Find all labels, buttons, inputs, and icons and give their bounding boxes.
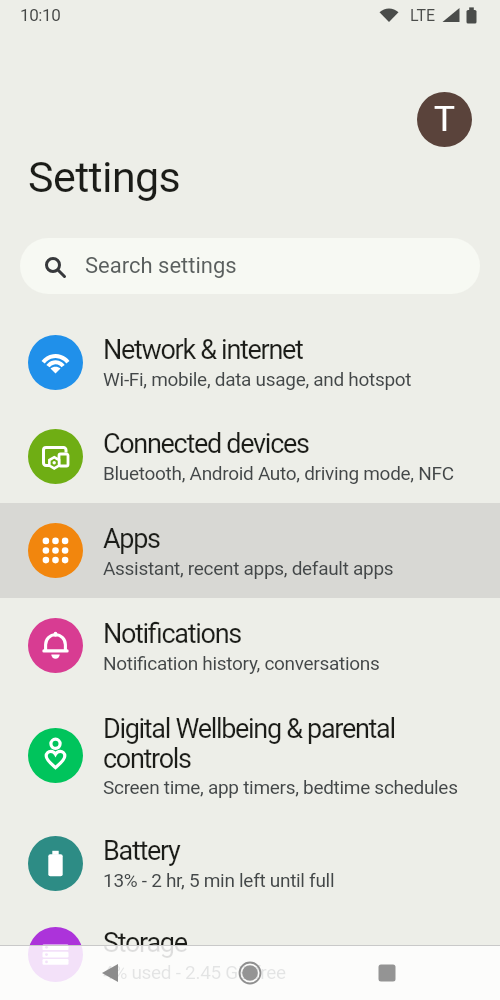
button[interactable] bbox=[84, 945, 139, 1000]
button[interactable]: Apps bbox=[0, 503, 500, 598]
staticText: Notifications bbox=[103, 618, 241, 650]
staticText: Wi-Fi, mobile, data usage, and hotspot bbox=[103, 368, 412, 390]
button[interactable]: Search settings bbox=[20, 238, 480, 294]
button[interactable]: Connected devices bbox=[0, 409, 500, 503]
staticText: Settings bbox=[28, 152, 181, 202]
button[interactable]: Battery bbox=[0, 817, 500, 909]
button[interactable]: Digital Wellbeing & parental controls bbox=[0, 693, 500, 817]
staticText: Battery bbox=[103, 835, 180, 867]
staticText: Apps bbox=[103, 523, 160, 555]
staticText: T bbox=[434, 99, 455, 140]
button[interactable]: Network & internet bbox=[0, 315, 500, 409]
staticText: 10:10 bbox=[20, 5, 61, 25]
staticText: 4% used - 2.45 GB free bbox=[103, 961, 286, 983]
staticText: Notification history, conversations bbox=[103, 652, 380, 674]
button[interactable] bbox=[359, 945, 414, 1000]
staticText: Digital Wellbeing & parental controls bbox=[103, 713, 395, 774]
staticText: 13% - 2 hr, 5 min left until full bbox=[103, 869, 335, 891]
staticText: LTE bbox=[410, 6, 436, 25]
staticText: Storage bbox=[103, 927, 187, 959]
button[interactable]: Storage bbox=[0, 909, 500, 1000]
staticText: Search settings bbox=[85, 253, 237, 279]
staticText: Bluetooth, Android Auto, driving mode, N… bbox=[103, 462, 454, 484]
button[interactable]: T bbox=[417, 92, 472, 147]
staticText: Screen time, app timers, bedtime schedul… bbox=[103, 776, 458, 798]
staticText: Network & internet bbox=[103, 334, 303, 366]
staticText: Connected devices bbox=[103, 428, 309, 460]
button[interactable]: Notifications bbox=[0, 598, 500, 693]
staticText: Assistant, recent apps, default apps bbox=[103, 557, 394, 579]
button[interactable] bbox=[222, 945, 277, 1000]
